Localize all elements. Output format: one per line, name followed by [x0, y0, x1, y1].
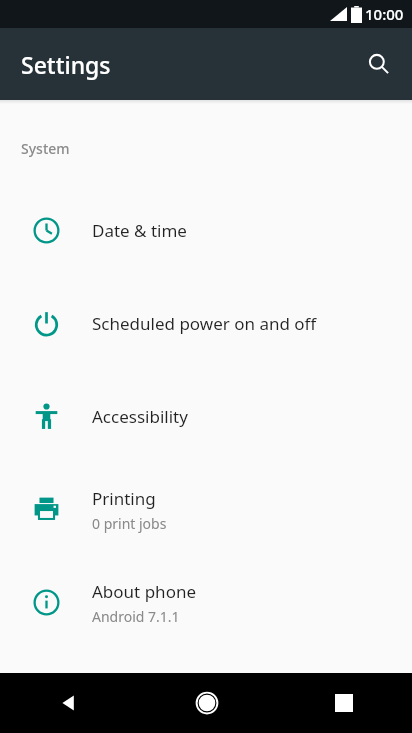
staticText: Scheduled power on and off	[92, 312, 317, 335]
button[interactable]: Home	[138, 673, 275, 733]
staticText: System	[21, 139, 70, 158]
button[interactable]: Printing	[0, 463, 412, 556]
button[interactable]: Accessibility	[0, 370, 412, 463]
staticText: Settings	[21, 49, 111, 80]
staticText: Android 7.1.1	[92, 607, 180, 626]
staticText: 0 print jobs	[92, 514, 167, 533]
button[interactable]: Scheduled power on and off	[0, 277, 412, 370]
staticText: About phone	[92, 580, 197, 603]
button[interactable]: Back	[0, 673, 138, 733]
staticText: Date & time	[92, 219, 187, 242]
button[interactable]: Backup & reset	[0, 100, 412, 112]
staticText: Printing	[92, 487, 156, 510]
button[interactable]: Date & time	[0, 184, 412, 277]
button[interactable]: Search	[355, 40, 403, 88]
staticText: Accessibility	[92, 405, 188, 428]
button[interactable]: Recents	[275, 673, 412, 733]
button[interactable]: About phone	[0, 556, 412, 649]
staticText: 10:00	[365, 4, 404, 24]
